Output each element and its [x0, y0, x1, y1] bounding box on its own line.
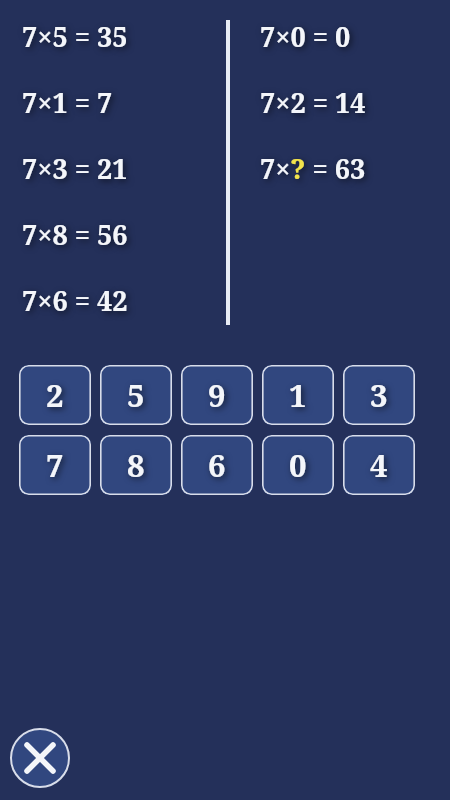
staticText: 9 — [208, 374, 226, 416]
button[interactable]: Close — [9, 727, 71, 789]
staticText: 7×0 = 0 — [260, 18, 351, 55]
staticText: 4 — [370, 444, 388, 486]
staticText: 7×2 = 14 — [260, 84, 366, 121]
staticText: 7×5 = 35 — [22, 18, 128, 55]
button[interactable]: 3 — [343, 365, 415, 425]
button[interactable]: 8 — [100, 435, 172, 495]
staticText: 6 — [208, 444, 226, 486]
staticText: 7×6 = 42 — [22, 282, 128, 319]
button[interactable]: 5 — [100, 365, 172, 425]
staticText: 8 — [127, 444, 145, 486]
button[interactable]: 0 — [262, 435, 334, 495]
staticText: 7 — [46, 444, 64, 486]
staticText: 2 — [46, 374, 64, 416]
button[interactable]: 1 — [262, 365, 334, 425]
button[interactable]: 4 — [343, 435, 415, 495]
staticText: 7×3 = 21 — [22, 150, 128, 187]
staticText: 1 — [289, 374, 307, 416]
staticText: 0 — [289, 444, 307, 486]
button[interactable]: 7 — [19, 435, 91, 495]
staticText: 3 — [370, 374, 388, 416]
staticText: 7×8 = 56 — [22, 216, 128, 253]
staticText: 5 — [127, 374, 145, 416]
staticText: 7×1 = 7 — [22, 84, 113, 121]
staticText: 7×? = 63 — [260, 150, 366, 187]
button[interactable]: 9 — [181, 365, 253, 425]
button[interactable]: 6 — [181, 435, 253, 495]
button[interactable]: 2 — [19, 365, 91, 425]
